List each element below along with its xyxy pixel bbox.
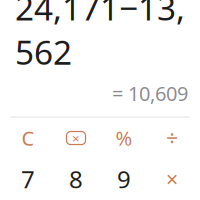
staticText: × <box>166 165 178 193</box>
staticText: % <box>115 125 132 151</box>
button[interactable]: % <box>100 117 148 158</box>
button[interactable]: ÷ <box>148 117 196 158</box>
staticText: 24,171−13,562 <box>15 0 185 74</box>
button[interactable]: Delete <box>52 117 100 158</box>
button[interactable]: C <box>4 117 52 158</box>
button[interactable]: 7 <box>4 158 52 199</box>
button[interactable]: × <box>148 158 196 199</box>
staticText: = 10,609 <box>112 80 188 107</box>
button[interactable]: 8 <box>52 158 100 199</box>
staticText: × <box>72 129 80 147</box>
staticText: 9 <box>117 163 131 195</box>
staticText: C <box>21 125 34 151</box>
staticText: 8 <box>69 163 83 195</box>
button[interactable]: 9 <box>100 158 148 199</box>
staticText: ÷ <box>166 124 178 152</box>
staticText: 7 <box>21 163 35 195</box>
